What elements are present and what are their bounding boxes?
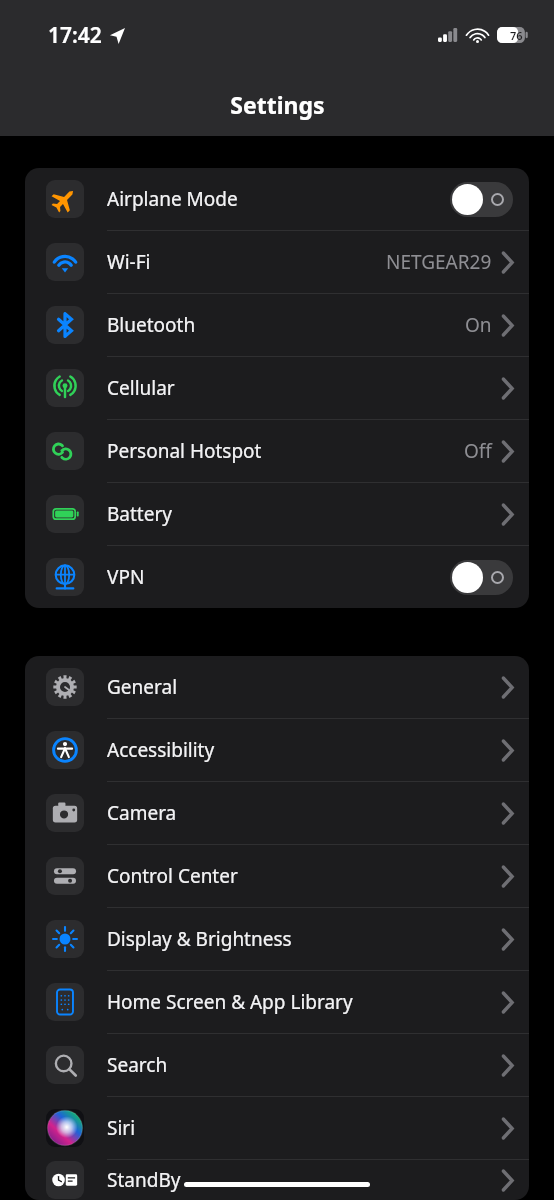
staticText: General [107, 674, 178, 700]
button[interactable]: Wi-Fi [25, 231, 529, 293]
staticText: Control Center [107, 863, 238, 889]
button[interactable]: Display & Brightness [25, 908, 529, 970]
staticText: Settings [230, 89, 325, 120]
button[interactable]: StandBy [25, 1160, 529, 1200]
button[interactable]: Battery [25, 483, 529, 545]
button[interactable]: Bluetooth [25, 294, 529, 356]
button[interactable]: Accessibility [25, 719, 529, 781]
staticText: Home Screen & App Library [107, 989, 353, 1015]
staticText: Airplane Mode [107, 186, 238, 212]
button[interactable]: Airplane Mode [25, 168, 529, 230]
button[interactable]: Personal Hotspot [25, 420, 529, 482]
staticText: Bluetooth [107, 312, 196, 338]
other: Airplane Mode toggle, off [450, 182, 513, 217]
staticText: Battery [107, 501, 172, 527]
staticText: Wi-Fi [107, 249, 151, 275]
button[interactable]: Search [25, 1034, 529, 1096]
button[interactable]: Home Screen & App Library [25, 971, 529, 1033]
button[interactable]: VPN [25, 546, 529, 608]
staticText: VPN [107, 564, 145, 590]
staticText: Accessibility [107, 737, 215, 763]
staticText: NETGEAR29 [386, 249, 492, 275]
staticText: Personal Hotspot [107, 438, 262, 464]
button[interactable]: Cellular [25, 357, 529, 419]
staticText: 76 [510, 28, 523, 43]
other: VPN toggle, off [450, 560, 513, 595]
staticText: StandBy [107, 1167, 181, 1193]
button[interactable]: Camera [25, 782, 529, 844]
button[interactable]: General [25, 656, 529, 718]
button[interactable]: Control Center [25, 845, 529, 907]
staticText: Camera [107, 800, 177, 826]
button[interactable]: Siri [25, 1097, 529, 1159]
staticText: Search [107, 1052, 168, 1078]
staticText: Off [464, 438, 492, 464]
staticText: Display & Brightness [107, 926, 292, 952]
staticText: Siri [107, 1115, 136, 1141]
staticText: Cellular [107, 375, 175, 401]
staticText: On [465, 312, 492, 338]
staticText: 17:42 [48, 21, 102, 50]
